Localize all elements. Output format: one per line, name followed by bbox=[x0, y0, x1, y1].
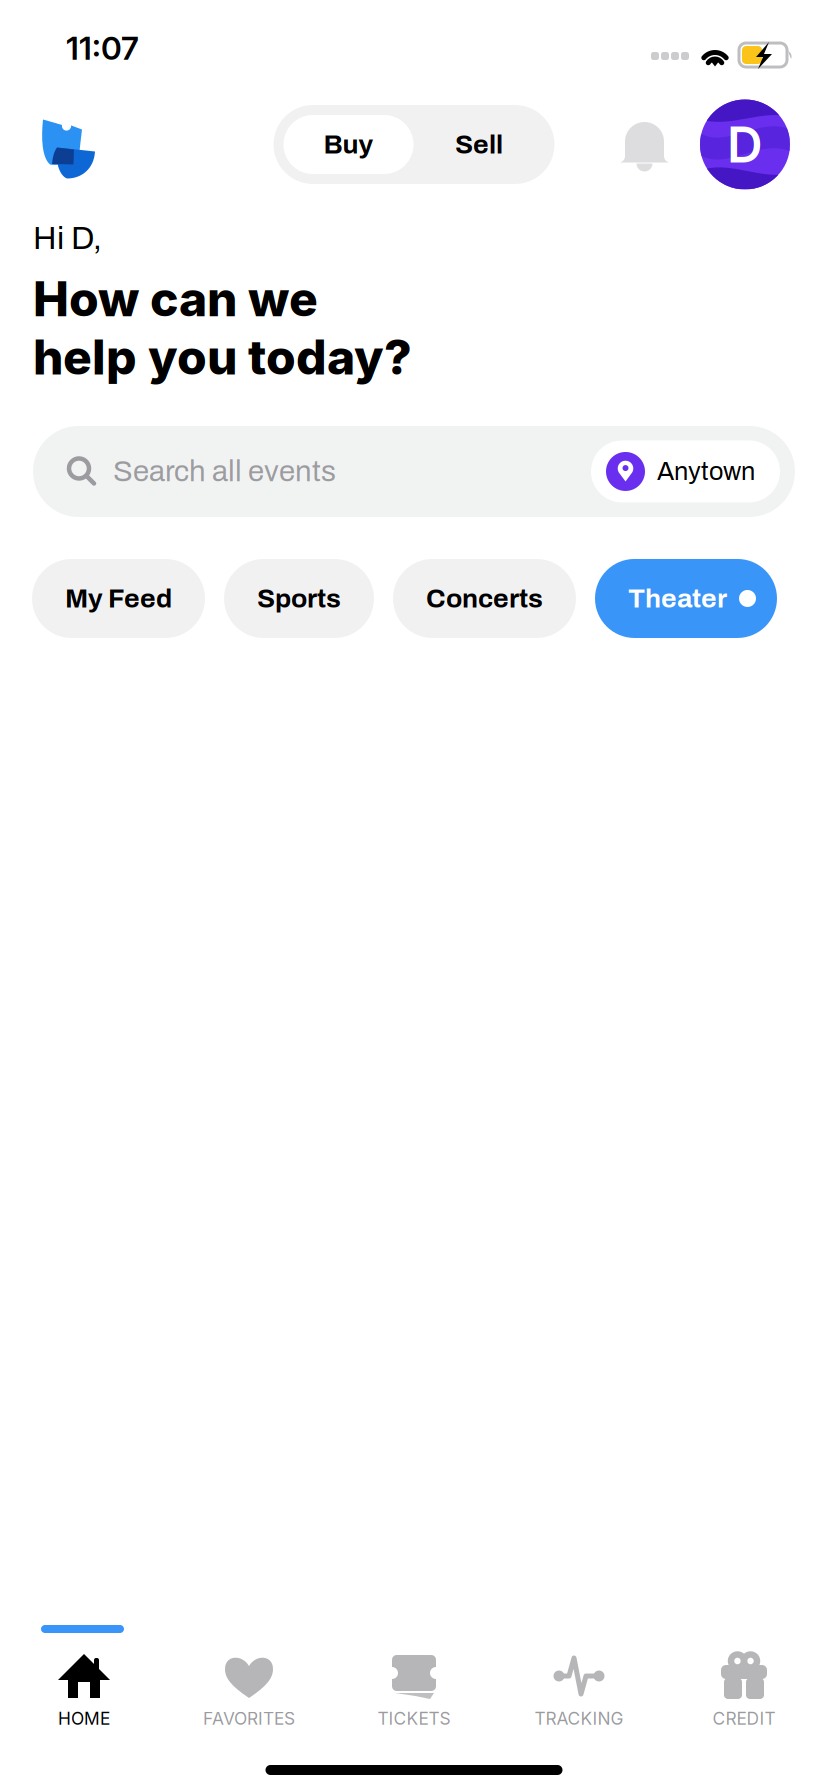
staticText: FAVORITES bbox=[203, 1708, 295, 1729]
button[interactable]: CREDIT bbox=[661, 1653, 826, 1745]
staticText: How can we bbox=[33, 270, 318, 328]
staticText: TRACKING bbox=[534, 1708, 623, 1729]
button[interactable]: Sports bbox=[224, 559, 374, 638]
button[interactable]: FAVORITES bbox=[166, 1653, 331, 1745]
staticText: Buy bbox=[323, 130, 373, 159]
staticText: 11:07 bbox=[66, 29, 139, 67]
button[interactable]: Account bbox=[700, 99, 790, 189]
staticText: CREDIT bbox=[712, 1708, 775, 1729]
staticText: My Feed bbox=[65, 584, 172, 613]
staticText: Sports bbox=[257, 584, 341, 613]
button[interactable]: My Feed bbox=[32, 559, 205, 638]
staticText: HOME bbox=[58, 1708, 110, 1729]
staticText: Theater bbox=[628, 584, 727, 613]
button[interactable]: StubHub bbox=[41, 105, 97, 183]
staticText: Search all events bbox=[113, 455, 336, 487]
staticText: Concerts bbox=[426, 584, 543, 613]
button[interactable]: Sell bbox=[413, 115, 544, 174]
button[interactable]: Concerts bbox=[393, 559, 576, 638]
staticText: Hi D, bbox=[33, 221, 102, 256]
button[interactable]: HOME bbox=[1, 1653, 166, 1745]
staticText: Anytown bbox=[657, 458, 755, 485]
staticText: D bbox=[727, 115, 763, 174]
staticText: Sell bbox=[455, 130, 503, 159]
button[interactable]: Theater bbox=[595, 559, 777, 638]
button[interactable]: Buy bbox=[283, 115, 413, 174]
button[interactable]: TRACKING bbox=[496, 1653, 661, 1745]
staticText: help you today? bbox=[33, 328, 412, 386]
button[interactable]: Anytown bbox=[591, 440, 780, 502]
button[interactable]: TICKETS bbox=[331, 1653, 496, 1745]
button[interactable]: Notifications bbox=[620, 116, 669, 172]
staticText: TICKETS bbox=[377, 1708, 450, 1729]
